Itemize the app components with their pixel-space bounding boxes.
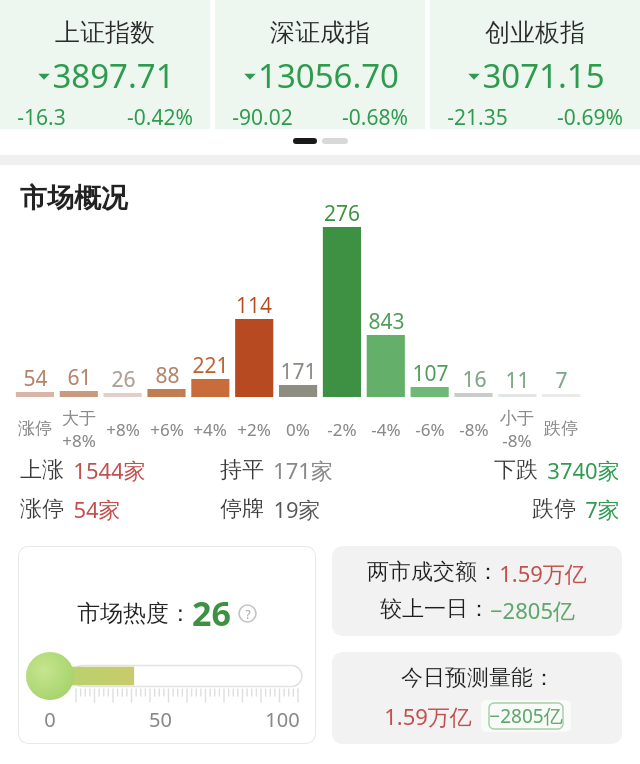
staticText: 88 xyxy=(155,361,180,390)
staticText: -8% xyxy=(459,418,489,441)
button[interactable]: 上涨 xyxy=(20,455,620,485)
button[interactable] xyxy=(293,138,317,144)
button[interactable]: 热度说明 xyxy=(238,604,257,623)
staticText: +4% xyxy=(193,418,227,441)
staticText: -0.69% xyxy=(557,103,623,129)
staticText: +6% xyxy=(150,418,184,441)
staticText: 1148 xyxy=(232,291,276,349)
staticText: 涨停 xyxy=(18,418,52,439)
staticText: −2805亿 xyxy=(489,703,563,729)
staticText: 上证指数 xyxy=(55,17,155,48)
staticText: -0.68% xyxy=(342,103,408,129)
staticText: 7 xyxy=(555,366,568,395)
staticText: 市场热度： xyxy=(77,599,192,628)
staticText: 停牌 xyxy=(220,495,264,523)
staticText: -4% xyxy=(371,418,401,441)
staticText: -6% xyxy=(415,418,445,441)
staticText: 1.59万亿 xyxy=(384,701,472,731)
button[interactable]: 上证指数 xyxy=(0,0,210,129)
staticText: 50 xyxy=(149,706,172,733)
staticText: 1544家 xyxy=(73,455,146,485)
button[interactable]: 深证成指 xyxy=(215,0,425,129)
staticText: 26 xyxy=(192,590,231,636)
staticText: 19家 xyxy=(273,494,321,524)
staticText: +8% xyxy=(106,418,140,441)
staticText: 171家 xyxy=(273,455,333,485)
staticText: -90.02 xyxy=(232,103,293,129)
staticText: -0.42% xyxy=(127,103,193,129)
staticText: 54 xyxy=(23,364,48,393)
staticText: 16 xyxy=(462,365,487,394)
button[interactable]: 创业板指 xyxy=(430,0,640,129)
staticText: 市场概况 xyxy=(20,181,128,215)
staticText: -2% xyxy=(327,418,357,441)
staticText: 两市成交额： xyxy=(367,558,499,586)
staticText: 今日预测量能： xyxy=(401,664,555,692)
staticText: 下跌 xyxy=(494,456,538,484)
staticText: 11 xyxy=(505,366,530,395)
staticText: 涨停 xyxy=(20,495,64,523)
staticText: 深证成指 xyxy=(270,17,370,48)
staticText: 3071.15 xyxy=(482,53,605,98)
staticText: 54家 xyxy=(73,494,121,524)
staticText: -21.35 xyxy=(447,103,508,129)
staticText: 较上一日： xyxy=(380,595,490,623)
button[interactable]: 今日预测量能： xyxy=(332,652,622,744)
button[interactable] xyxy=(322,138,348,144)
button[interactable]: 市场热度： xyxy=(18,546,316,744)
staticText: 3740家 xyxy=(547,455,620,485)
staticText: 创业板指 xyxy=(485,17,585,48)
staticText: 221 xyxy=(192,351,229,380)
staticText: -8% xyxy=(502,429,532,452)
staticText: 小于 xyxy=(500,408,534,429)
staticText: 跌停 xyxy=(532,495,576,523)
button[interactable]: 涨停 xyxy=(20,494,620,524)
staticText: -16.3 xyxy=(17,103,66,129)
staticText: 3897.71 xyxy=(52,53,175,98)
staticText: 61 xyxy=(67,363,92,392)
staticText: 1.59万亿 xyxy=(499,558,587,588)
staticText: 843 xyxy=(368,307,405,336)
staticText: 107 xyxy=(412,359,449,388)
staticText: 13056.70 xyxy=(258,53,399,98)
staticText: 大于 xyxy=(62,408,96,429)
button[interactable]: 两市成交额： xyxy=(332,546,622,636)
staticText: 2763 xyxy=(320,199,364,257)
staticText: +8% xyxy=(62,429,96,452)
staticText: +2% xyxy=(237,418,271,441)
staticText: ? xyxy=(245,606,251,622)
staticText: 100 xyxy=(265,706,300,733)
staticText: 0% xyxy=(286,418,310,441)
staticText: 7家 xyxy=(585,494,620,524)
staticText: 跌停 xyxy=(544,418,578,439)
staticText: 0 xyxy=(44,706,56,733)
staticText: 上涨 xyxy=(20,456,64,484)
staticText: 26 xyxy=(111,365,136,394)
staticText: 171 xyxy=(280,357,317,386)
staticText: −2805亿 xyxy=(490,595,575,625)
staticText: 持平 xyxy=(220,456,264,484)
